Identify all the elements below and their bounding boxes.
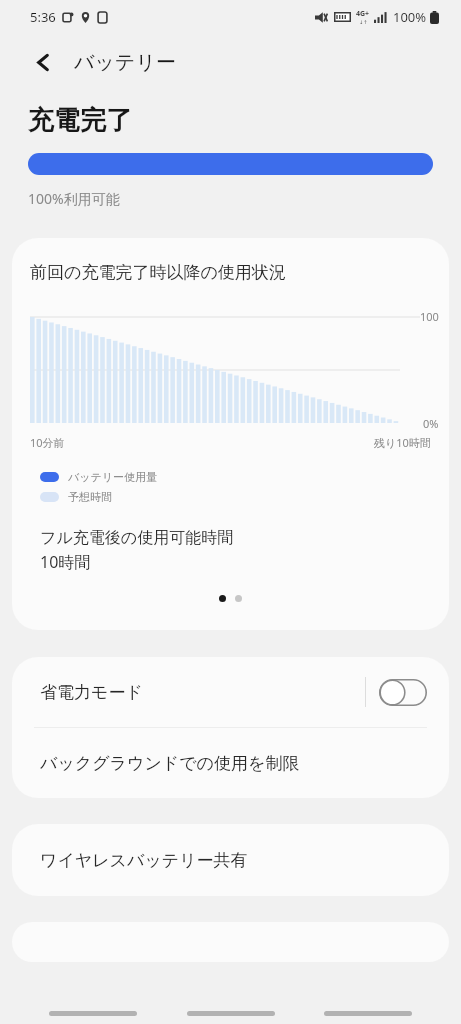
staticText: 充電完了 <box>28 104 132 137</box>
staticText: フル充電後の使用可能時間 <box>40 528 234 548</box>
staticText: 残り10時間 <box>374 435 431 450</box>
staticText: 0% <box>423 416 439 431</box>
staticText: バックグラウンドでの使用を制限 <box>40 753 300 774</box>
staticText: バッテリー使用量 <box>68 470 158 484</box>
staticText: 10時間 <box>40 551 91 573</box>
staticText: 100 <box>420 309 439 324</box>
button[interactable]: Back <box>26 45 60 79</box>
button[interactable]: 省電力モード <box>12 657 449 727</box>
button[interactable]: バックグラウンドでの使用を制限 <box>12 728 449 798</box>
button[interactable]: Navigation <box>187 1011 275 1016</box>
staticText: ↓↑ <box>359 19 368 25</box>
staticText: 予想時間 <box>68 490 112 504</box>
button[interactable]: 省電力モード切り替え <box>379 679 427 706</box>
staticText: 100% <box>393 8 427 26</box>
staticText: バッテリー <box>74 50 176 75</box>
button[interactable]: Navigation <box>324 1011 412 1016</box>
button[interactable]: Navigation <box>49 1011 137 1016</box>
button[interactable]: ワイヤレスバッテリー共有 <box>12 824 449 896</box>
staticText: 5:36 <box>30 8 56 26</box>
staticText: 100%利用可能 <box>28 189 120 208</box>
staticText: 10分前 <box>30 435 65 450</box>
staticText: ワイヤレスバッテリー共有 <box>40 850 248 871</box>
staticText: 省電力モード <box>40 682 143 703</box>
staticText: 前回の充電完了時以降の使用状況 <box>30 262 286 283</box>
staticText: 4G+ <box>356 9 370 19</box>
